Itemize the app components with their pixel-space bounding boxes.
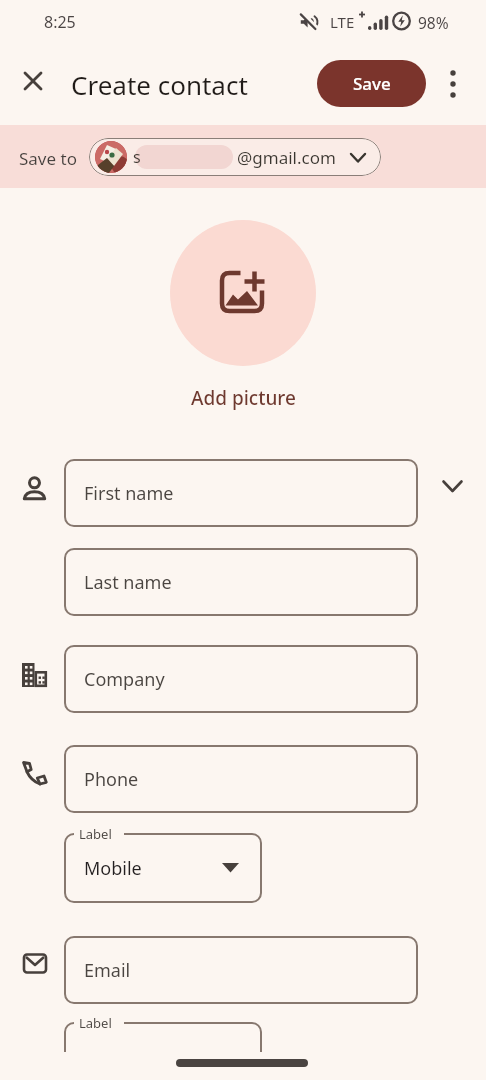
staticText: Create contact [71, 67, 248, 102]
staticText: Email [84, 958, 131, 983]
staticText: Company [84, 667, 165, 692]
staticText: s [133, 146, 141, 168]
button[interactable]: s [89, 138, 381, 176]
button[interactable]: Phone [64, 745, 418, 813]
button[interactable] [170, 220, 316, 366]
staticText: Last name [84, 570, 172, 595]
staticText: Mobile [84, 856, 142, 881]
button[interactable]: Last name [64, 548, 418, 616]
staticText: LTE [330, 12, 355, 32]
button[interactable]: Email [64, 936, 418, 1004]
button[interactable]: First name [64, 459, 418, 527]
staticText: Save to [19, 147, 77, 170]
staticText: 8:25 [44, 11, 76, 33]
staticText: First name [84, 481, 174, 506]
staticText: Add picture [191, 385, 296, 411]
button[interactable] [15, 63, 51, 99]
button[interactable] [441, 66, 465, 102]
staticText: Label [79, 1014, 112, 1032]
button[interactable]: Save [317, 60, 426, 107]
staticText: Save [353, 72, 391, 95]
staticText: @gmail.com [237, 146, 336, 169]
button[interactable]: Mobile [64, 833, 262, 903]
button[interactable]: Company [64, 645, 418, 713]
staticText: Phone [84, 767, 139, 792]
staticText: Label [79, 825, 112, 843]
staticText: 98% [418, 12, 449, 33]
